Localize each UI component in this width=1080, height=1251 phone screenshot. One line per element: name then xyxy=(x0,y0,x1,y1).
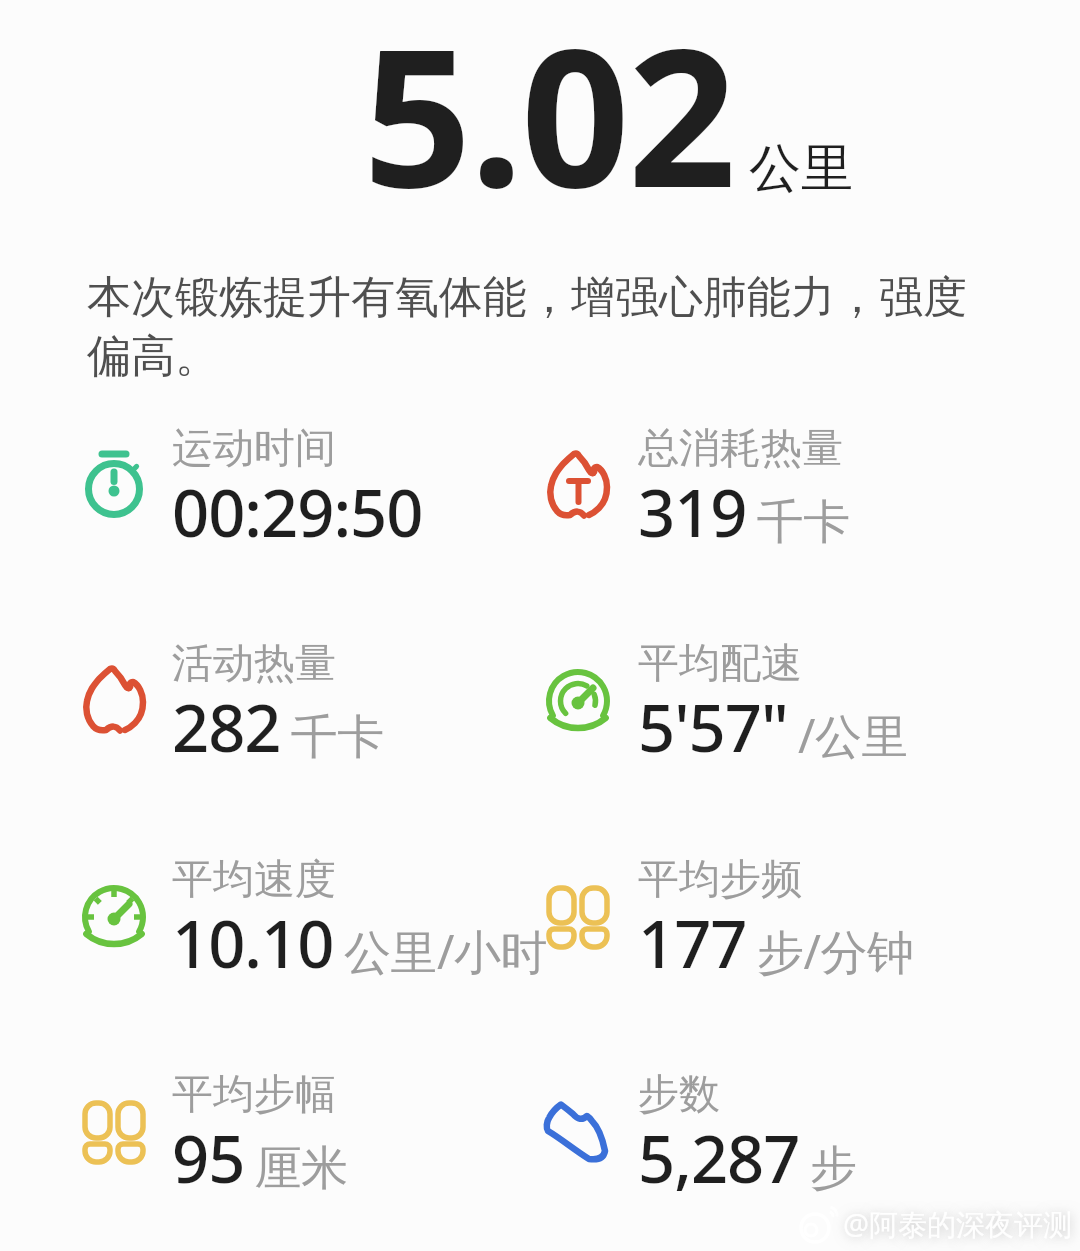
staticText: 公里 xyxy=(749,136,853,202)
staticText: 平均速度 xyxy=(172,854,336,906)
staticText: 公里/小时 xyxy=(344,919,547,983)
staticText: 95 xyxy=(172,1114,245,1203)
staticText: 本次锻炼提升有氧体能，增强心肺能力，强度 偏高。 xyxy=(87,270,967,384)
staticText: 5'57" xyxy=(638,683,788,772)
staticText: 平均步幅 xyxy=(172,1069,336,1121)
staticText: 平均步频 xyxy=(638,854,802,906)
button[interactable]: 平均速度 xyxy=(172,854,336,906)
staticText: 10.10 xyxy=(172,899,334,988)
staticText: @阿泰的深夜评测 xyxy=(843,1204,1073,1244)
staticText: 总消耗热量 xyxy=(638,423,843,475)
staticText: 00:29:50 xyxy=(172,468,423,557)
staticText: 活动热量 xyxy=(172,638,336,690)
staticText: 319 xyxy=(638,468,747,557)
staticText: /公里 xyxy=(798,703,908,767)
staticText: 平均配速 xyxy=(638,638,802,690)
staticText: 步 xyxy=(810,1139,857,1198)
staticText: 282 xyxy=(172,683,281,772)
staticText: 5.02 xyxy=(363,0,735,243)
staticText: 177 xyxy=(638,899,747,988)
button[interactable]: 平均步频 xyxy=(638,854,802,906)
staticText: 步数 xyxy=(638,1069,720,1121)
button[interactable]: 运动时间 xyxy=(172,423,336,475)
button[interactable]: 步数 xyxy=(638,1069,720,1121)
staticText: 5,287 xyxy=(638,1114,800,1203)
staticText: 千卡 xyxy=(291,708,384,767)
staticText: 千卡 xyxy=(757,493,850,552)
button[interactable]: 平均步幅 xyxy=(172,1069,336,1121)
button[interactable]: 活动热量 xyxy=(172,638,336,690)
staticText: 运动时间 xyxy=(172,423,336,475)
button[interactable]: 总消耗热量 xyxy=(638,423,843,475)
button[interactable]: 平均配速 xyxy=(638,638,802,690)
staticText: 厘米 xyxy=(255,1139,348,1198)
staticText: 步/分钟 xyxy=(757,919,914,983)
